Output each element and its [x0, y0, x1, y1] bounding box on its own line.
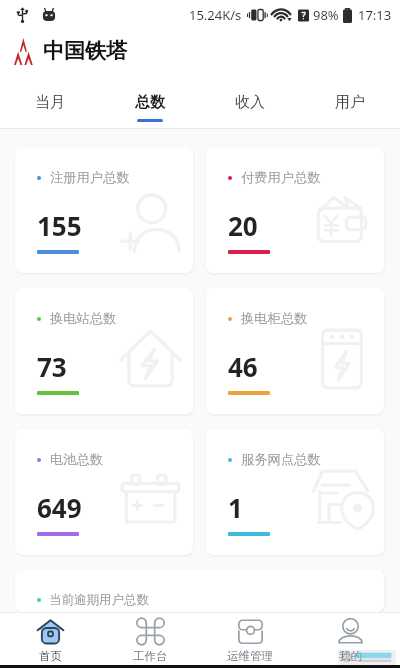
- staticText: 中国铁塔: [43, 38, 127, 64]
- button[interactable]: Home: [0, 613, 100, 665]
- staticText: 用户: [335, 93, 365, 112]
- staticText: 注册用户总数: [50, 169, 130, 186]
- staticText: 98%: [313, 6, 339, 24]
- staticText: 首页: [39, 649, 62, 663]
- staticText: 换电柜总数: [241, 310, 308, 327]
- button[interactable]: Profile: [300, 613, 400, 665]
- staticText: 73: [37, 349, 67, 384]
- staticText: 17:13: [358, 6, 392, 24]
- staticText: 服务网点总数: [241, 451, 321, 468]
- staticText: 工作台: [133, 649, 168, 663]
- button[interactable]: Workbench: [100, 613, 200, 665]
- staticText: 155: [37, 208, 82, 243]
- staticText: 换电站总数: [50, 310, 117, 327]
- staticText: 1: [228, 490, 243, 525]
- button[interactable]: 服务网点总数: [206, 429, 384, 555]
- button[interactable]: 总数: [100, 72, 200, 128]
- staticText: 15.24K/s: [189, 6, 242, 24]
- staticText: 649: [37, 490, 82, 525]
- button[interactable]: 付费用户总数: [206, 147, 384, 273]
- staticText: 运维管理: [227, 649, 273, 663]
- button[interactable]: 当月: [0, 72, 100, 128]
- button[interactable]: 换电站总数: [15, 288, 193, 414]
- button[interactable]: 电池总数: [15, 429, 193, 555]
- button[interactable]: Operations: [200, 613, 300, 665]
- button[interactable]: 用户: [300, 72, 400, 128]
- button[interactable]: 收入: [200, 72, 300, 128]
- staticText: 总数: [135, 93, 165, 112]
- staticText: 当前逾期用户总数: [49, 592, 149, 608]
- button[interactable]: 当前逾期用户总数: [15, 570, 384, 612]
- staticText: 电池总数: [50, 451, 104, 468]
- button[interactable]: 注册用户总数: [15, 147, 193, 273]
- button[interactable]: 换电柜总数: [206, 288, 384, 414]
- staticText: 当月: [35, 93, 65, 112]
- staticText: 20: [228, 208, 258, 243]
- staticText: 46: [228, 349, 258, 384]
- staticText: 付费用户总数: [241, 169, 321, 186]
- staticText: 我的: [339, 649, 362, 663]
- staticText: 收入: [235, 93, 265, 112]
